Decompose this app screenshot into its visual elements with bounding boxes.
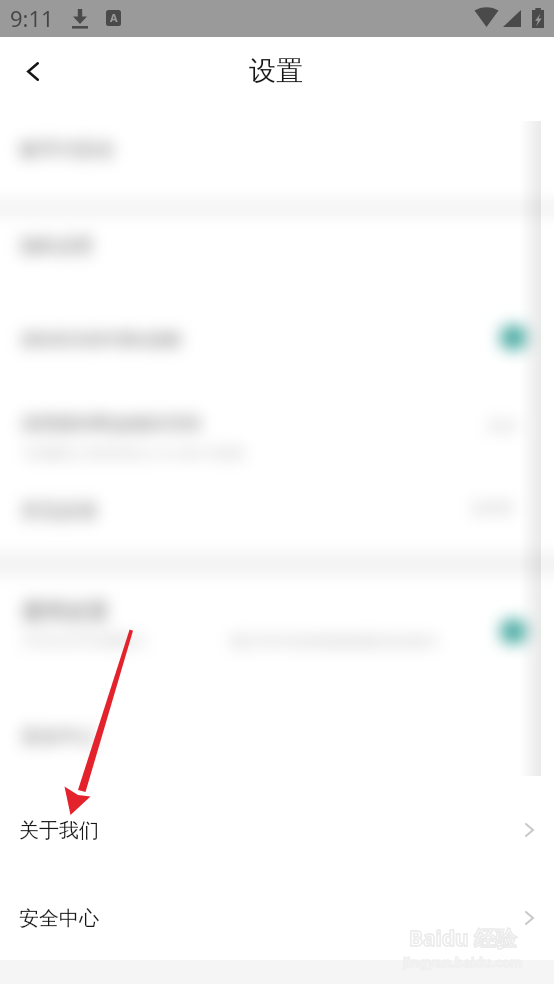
button[interactable]: 关于我们 bbox=[0, 784, 554, 872]
staticText: 设置 bbox=[249, 54, 303, 88]
staticText: 账号与安全 bbox=[20, 138, 115, 162]
button[interactable]: Back bbox=[7, 49, 59, 93]
staticText: 意见反馈 bbox=[21, 499, 97, 523]
staticText: 开启之后可以被他人 bbox=[22, 632, 148, 650]
button[interactable]: 安全中心 bbox=[0, 872, 554, 960]
staticText: 关于我们 bbox=[19, 818, 99, 843]
staticText: Baidu 经验 bbox=[409, 924, 517, 953]
staticText: 9:11 bbox=[10, 3, 54, 33]
staticText: 接收新消息时通知提醒 bbox=[21, 330, 181, 350]
staticText: 安全中心 bbox=[21, 725, 97, 749]
staticText: 通用设置 bbox=[21, 598, 109, 626]
staticText: A bbox=[110, 10, 118, 25]
staticText: 隐私设置 bbox=[21, 235, 93, 258]
staticText: jingyan.baidu.com bbox=[403, 953, 523, 971]
staticText: 清理缓存释放储存空间 bbox=[21, 413, 201, 436]
staticText: 安全中心 bbox=[19, 906, 99, 931]
